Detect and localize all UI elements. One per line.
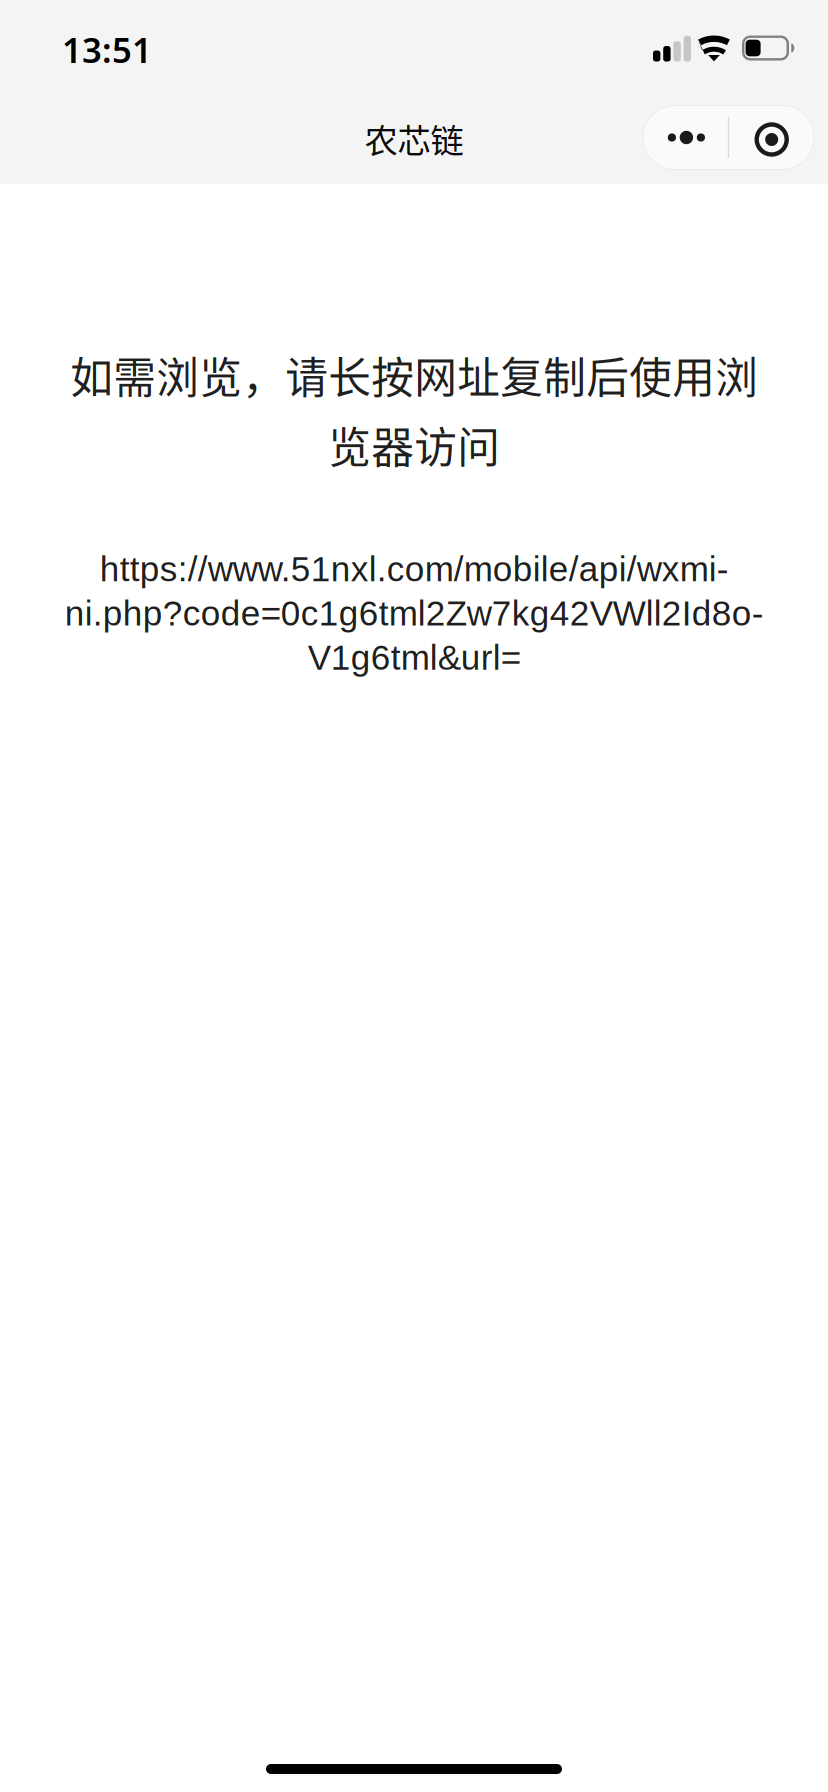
staticText: https://www.51nxl.com/mobile/api/wxmi- n… bbox=[64, 550, 763, 677]
button[interactable]: Close mini program bbox=[729, 105, 814, 169]
staticText: 如需浏览，请长按网址复制后使用浏 览器访问 bbox=[70, 344, 758, 476]
button[interactable]: More bbox=[643, 105, 728, 169]
staticText: 农芯链 bbox=[364, 114, 463, 163]
staticText: 13:51 bbox=[62, 26, 152, 72]
